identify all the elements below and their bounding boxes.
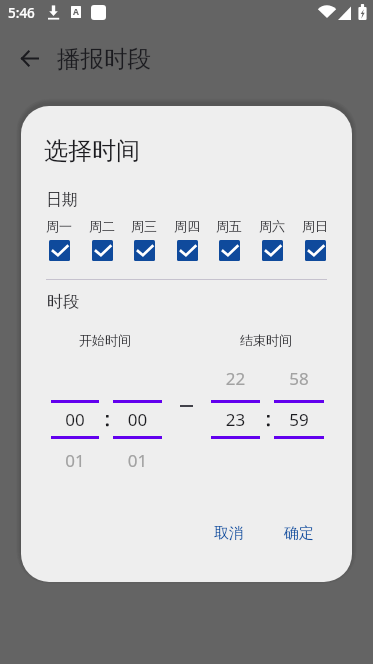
staticText: 01 <box>51 449 99 472</box>
staticText: 00 <box>113 408 162 431</box>
staticText: 00 <box>51 408 99 431</box>
other: Wi-Fi <box>319 6 335 18</box>
staticText: 播报时段 <box>57 44 151 74</box>
staticText: 时段 <box>47 292 79 312</box>
button[interactable]: 周日 <box>293 218 337 261</box>
staticText: 23 <box>211 408 260 431</box>
button[interactable]: 周三 <box>122 218 166 261</box>
button[interactable]: 周一 <box>37 218 81 261</box>
staticText: 周三 <box>131 218 157 234</box>
other: Download <box>48 5 60 20</box>
button[interactable]: 周二 <box>80 218 124 261</box>
button[interactable]: 周六 <box>250 218 294 261</box>
staticText: 58 <box>274 367 324 390</box>
staticText: 取消 <box>214 524 244 543</box>
button[interactable]: 取消 <box>206 516 252 551</box>
staticText: 周五 <box>216 218 242 234</box>
staticText: 结束时间 <box>240 332 292 348</box>
staticText: 5:46 <box>8 4 35 22</box>
staticText: 59 <box>274 408 324 431</box>
other: Battery <box>358 4 367 20</box>
button[interactable]: 周四 <box>165 218 209 261</box>
staticText: 周六 <box>259 218 285 234</box>
staticText: 周日 <box>302 218 328 234</box>
other: Signal <box>338 6 351 20</box>
button[interactable]: 确定 <box>276 516 322 551</box>
button[interactable]: 22 <box>211 364 260 476</box>
staticText: 22 <box>211 367 260 390</box>
staticText: 日期 <box>46 190 78 210</box>
button[interactable]: Back <box>8 37 50 79</box>
button[interactable]: 58 <box>274 364 324 476</box>
button[interactable]: 周五 <box>207 218 251 261</box>
staticText: 周四 <box>174 218 200 234</box>
staticText: 周二 <box>89 218 115 234</box>
staticText: 选择时间 <box>44 136 140 166</box>
staticText: 开始时间 <box>79 332 131 348</box>
staticText: 确定 <box>284 524 314 543</box>
staticText: 01 <box>113 449 162 472</box>
staticText: A <box>73 6 79 18</box>
button[interactable]: 00 <box>113 364 162 476</box>
button[interactable]: 00 <box>51 364 99 476</box>
staticText: 周一 <box>46 218 72 234</box>
